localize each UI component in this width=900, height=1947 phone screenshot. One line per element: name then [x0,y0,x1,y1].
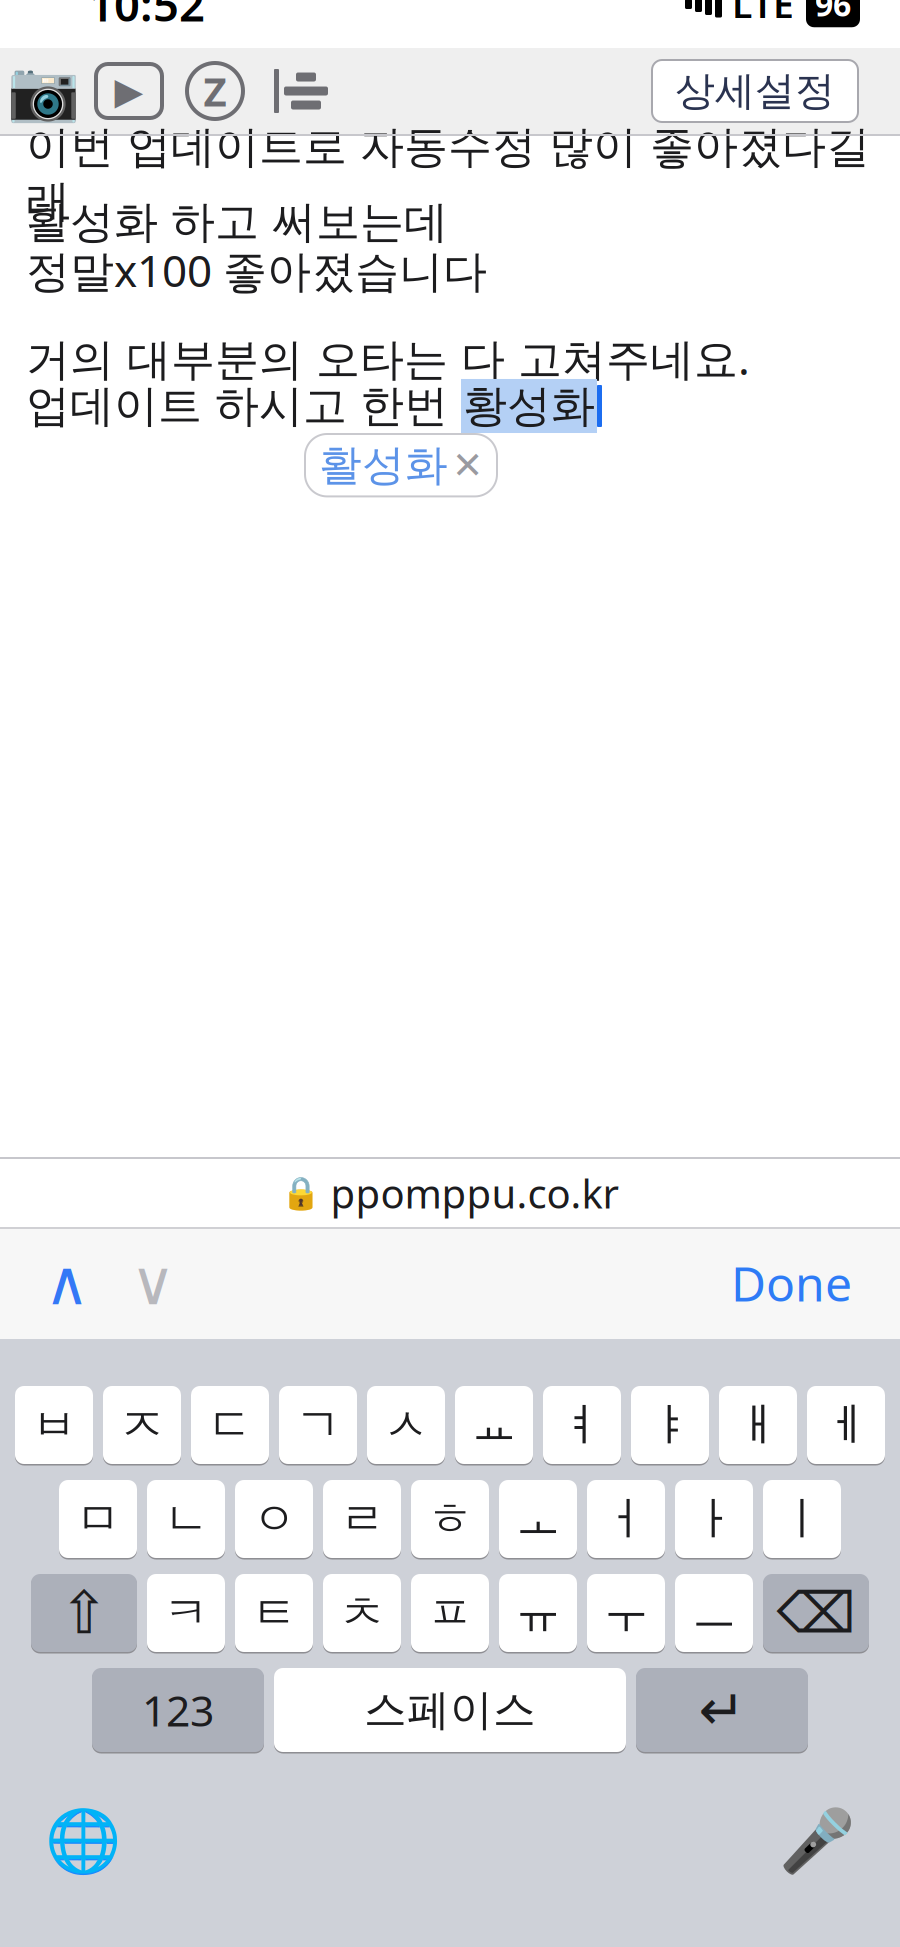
button[interactable]: ㅅ [367,1384,445,1465]
staticText: ㅌ [251,1585,296,1641]
button[interactable]: ㅛ [455,1384,533,1465]
button[interactable]: 정렬 [258,56,344,126]
button[interactable]: ㅂ [15,1384,93,1465]
button[interactable]: ㅜ [587,1572,665,1653]
button[interactable]: ㅈ [103,1384,181,1465]
button[interactable]: Return [636,1666,808,1753]
staticText: 업데이트 하시고 한번 [26,379,461,433]
button[interactable]: 다음 키보드 [0,1803,128,1879]
button[interactable]: 받아쓰기 [772,1803,900,1879]
staticText: ⇧ [59,1580,108,1646]
button[interactable]: ㄱ [279,1384,357,1465]
button[interactable]: ㅓ [587,1478,665,1559]
button[interactable]: Delete [763,1572,869,1653]
button[interactable]: ㄴ [147,1478,225,1559]
staticText: ㅠ [515,1585,560,1641]
staticText: 상세설정 [675,66,835,115]
button[interactable]: ㅌ [235,1572,313,1653]
staticText: ㅊ [339,1585,384,1641]
staticText: ㅗ [515,1491,560,1547]
staticText: ㅅ [383,1397,428,1453]
button[interactable]: 동영상 첨부 [86,56,172,126]
staticText: ⌫ [776,1581,855,1645]
staticText: ㅎ [427,1491,472,1547]
staticText: ㅈ [119,1397,164,1453]
staticText: ㅣ [779,1491,824,1547]
staticText: 황성화 [463,379,595,433]
button[interactable]: ㄹ [323,1478,401,1559]
staticText: ㅓ [603,1491,648,1547]
button[interactable]: ㅕ [543,1384,621,1465]
staticText: 거의 대부분의 오타는 다 고쳐주네요. [26,329,750,387]
staticText: 🎤 [779,1806,855,1876]
button[interactable]: ㅋ [147,1572,225,1653]
staticText: ㄴ [163,1491,208,1547]
staticText: ㅍ [427,1585,472,1641]
staticText: ∧ [44,1248,89,1318]
staticText: 활성화 [319,439,448,491]
staticText: ㄷ [207,1397,252,1453]
button[interactable]: ㅑ [631,1384,709,1465]
button[interactable]: 다음 입력란 [110,1248,196,1318]
staticText: 이번 업데이트로 자동수정 많이 좋아졌다길래 [26,120,870,228]
button[interactable]: ㅏ [675,1478,753,1559]
staticText: ㅑ [647,1397,692,1453]
staticText: ㅁ [75,1491,120,1547]
button[interactable]: 활성화 [305,434,497,496]
staticText: 🌐 [45,1806,121,1876]
staticText: ㅂ [31,1397,76,1453]
staticText: ㅔ [823,1397,868,1453]
staticText: 정말x100 좋아졌습니다 [26,241,487,299]
staticText: ↵ [698,1678,745,1742]
staticText: ppomppu.co.kr [330,1166,619,1219]
button[interactable]: Done [731,1248,900,1318]
staticText: 📷 [6,57,79,124]
staticText: ㄹ [339,1491,384,1547]
staticText: ▶ [114,70,143,112]
button[interactable]: ㅠ [499,1572,577,1653]
staticText: 96 [815,0,851,25]
staticText: ㅕ [559,1397,604,1453]
button[interactable]: ㅎ [411,1478,489,1559]
staticText: LTE [732,0,794,29]
staticText: 🔒 [280,1175,320,1211]
button[interactable]: 이모티콘 [172,56,258,126]
button[interactable]: ㅣ [763,1478,841,1559]
staticText: ㅐ [735,1397,780,1453]
button[interactable]: ㅊ [323,1572,401,1653]
staticText: ㄱ [295,1397,340,1453]
staticText: ∨ [130,1248,175,1318]
button[interactable]: 스페이스 [274,1666,626,1753]
staticText: ㅇ [251,1491,296,1547]
button[interactable]: ㅡ [675,1572,753,1653]
button[interactable]: ㅁ [59,1478,137,1559]
staticText: 123 [142,1682,214,1738]
button[interactable]: ㅗ [499,1478,577,1559]
staticText: ㅛ [471,1397,516,1453]
staticText: 활성화 하고 써보는데 [26,195,448,249]
staticText: 10:52 [88,0,205,34]
staticText: ㅏ [691,1491,736,1547]
staticText: ㅋ [163,1585,208,1641]
staticText: ㅡ [691,1585,736,1641]
button[interactable]: 이전 입력란 [0,1248,110,1318]
button[interactable]: ㅇ [235,1478,313,1559]
staticText: 스페이스 [364,1684,536,1736]
button[interactable]: 123 [92,1666,264,1753]
button[interactable]: ㄷ [191,1384,269,1465]
button[interactable]: ㅍ [411,1572,489,1653]
staticText: ✕ [452,444,483,486]
button[interactable]: Shift [31,1572,137,1653]
button[interactable]: 상세설정 [652,60,900,122]
button[interactable]: ㅐ [719,1384,797,1465]
button[interactable]: 사진 첨부 [0,56,86,126]
staticText: Done [731,1251,852,1315]
staticText: ㅜ [603,1585,648,1641]
button[interactable]: ㅔ [807,1384,885,1465]
staticText: Z [203,64,226,117]
